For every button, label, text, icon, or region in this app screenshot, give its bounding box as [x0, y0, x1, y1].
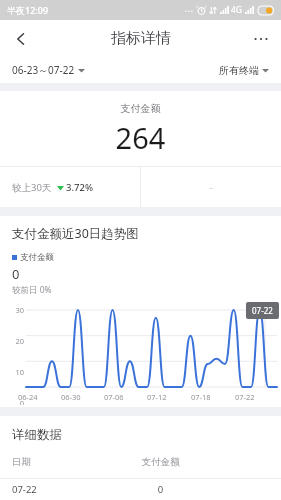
staticText: 06-23～07-22 [12, 63, 75, 77]
staticText: 07-22 [12, 483, 111, 496]
staticText: 07-12 [147, 392, 191, 402]
staticText: 所有终端 [219, 64, 259, 77]
staticText: 指标详情 [111, 29, 171, 48]
staticText: 日期 [12, 456, 111, 468]
staticText: 半夜12:09 [7, 4, 49, 16]
staticText: 支付金额 [0, 102, 281, 115]
staticText: 30 [4, 305, 24, 315]
button[interactable]: More options [241, 20, 281, 57]
staticText: 较上30天 [12, 181, 52, 194]
button[interactable]: Back [0, 20, 42, 57]
staticText: 07-18 [191, 392, 235, 402]
staticText: 支付金额 [111, 456, 210, 468]
staticText: 支付金额 [20, 252, 54, 263]
staticText: 支付金额近30日趋势图 [12, 225, 139, 242]
staticText: 07-22 [235, 392, 279, 402]
staticText: 0 [12, 265, 20, 283]
staticText: 4G [231, 4, 243, 16]
staticText: 10 [4, 367, 24, 377]
staticText: 06-24 [18, 392, 61, 402]
staticText: 0 [111, 483, 210, 496]
staticText: 07-22 [252, 305, 273, 316]
staticText: 20 [4, 336, 24, 346]
button[interactable]: 06-23～07-22 [12, 63, 85, 77]
staticText: 详细数据 [12, 427, 62, 443]
staticText: 3.72% [66, 181, 93, 194]
button[interactable]: 所有终端 [219, 64, 269, 77]
staticText: 07-06 [104, 392, 147, 402]
staticText: 06-30 [61, 392, 104, 402]
button[interactable]: 07-22 [0, 479, 281, 500]
staticText: 较前日 0% [12, 284, 52, 296]
staticText: – [209, 182, 213, 193]
staticText: 264 [0, 118, 281, 157]
staticText: 0 [4, 398, 24, 405]
